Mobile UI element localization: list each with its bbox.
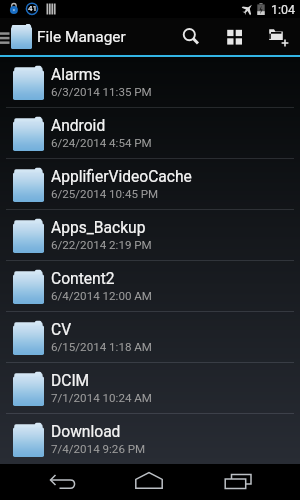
button[interactable]: Back: [35, 464, 91, 500]
staticText: 41: [28, 4, 37, 13]
button[interactable]: New folder: [256, 18, 300, 55]
button[interactable]: Alarms: [0, 57, 300, 107]
staticText: Alarms: [51, 66, 101, 84]
button[interactable]: Apps_Backup: [0, 210, 300, 260]
staticText: 6/3/2014 11:35 PM: [51, 85, 152, 99]
button[interactable]: Recents: [211, 464, 267, 500]
staticText: 6/15/2014 1:18 AM: [51, 340, 152, 354]
staticText: 7/4/2014 9:26 PM: [51, 442, 146, 456]
staticText: 1:04: [271, 2, 296, 17]
staticText: 6/22/2014 2:19 PM: [51, 238, 152, 252]
staticText: 6/4/2014 12:00 AM: [51, 289, 152, 303]
button[interactable]: Grid view: [213, 18, 256, 55]
button[interactable]: Download: [0, 414, 300, 464]
staticText: Download: [51, 423, 121, 441]
staticText: Content2: [51, 270, 115, 288]
staticText: DCIM: [51, 372, 90, 390]
button[interactable]: Navigate up: [0, 18, 11, 55]
staticText: File Manager: [37, 28, 126, 46]
button[interactable]: Home: [122, 464, 178, 500]
button[interactable]: ApplifierVideoCache: [0, 159, 300, 209]
button[interactable]: CV: [0, 312, 300, 362]
button[interactable]: Search: [168, 18, 213, 55]
staticText: Android: [51, 117, 106, 135]
button[interactable]: Content2: [0, 261, 300, 311]
staticText: 6/25/2014 10:45 PM: [51, 187, 159, 201]
staticText: 6/24/2014 4:54 PM: [51, 136, 152, 150]
staticText: ApplifierVideoCache: [51, 168, 192, 186]
staticText: 7/1/2014 10:24 AM: [51, 391, 152, 405]
button[interactable]: Android: [0, 108, 300, 158]
staticText: Apps_Backup: [51, 219, 146, 237]
staticText: CV: [51, 321, 72, 339]
button[interactable]: DCIM: [0, 363, 300, 413]
